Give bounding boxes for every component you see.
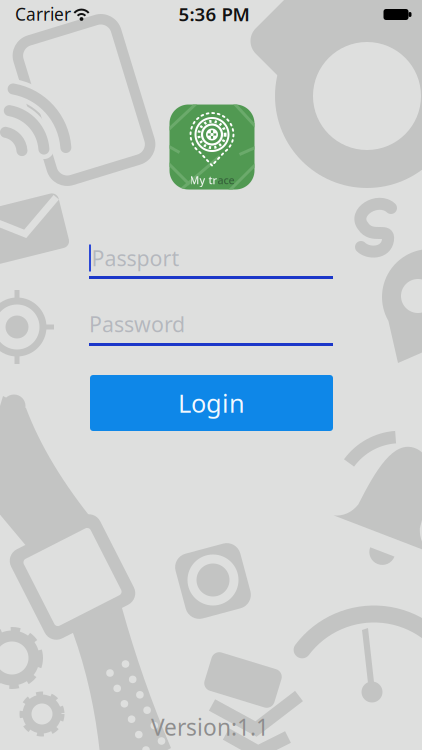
button[interactable]: Passport [89, 245, 333, 279]
staticText: Login [178, 386, 245, 420]
staticText: 5:36 PM [178, 2, 249, 26]
staticText: ace [217, 173, 234, 187]
staticText: Passport [91, 244, 179, 272]
button[interactable]: Password [89, 310, 333, 346]
staticText: Carrier [15, 2, 71, 25]
staticText: Version:1.1 [151, 712, 269, 742]
staticText: Password [89, 310, 185, 338]
staticText: My tr [189, 173, 217, 187]
button[interactable]: Login [90, 375, 333, 431]
